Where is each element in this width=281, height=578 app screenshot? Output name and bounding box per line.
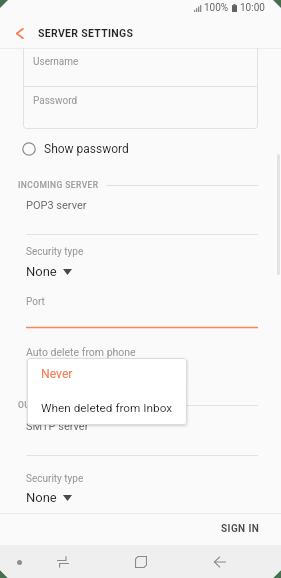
staticText: 100% xyxy=(204,2,229,14)
button[interactable]: Recent apps xyxy=(41,545,85,578)
staticText: Never xyxy=(41,367,73,381)
button[interactable]: Back xyxy=(198,545,242,578)
staticText: None xyxy=(26,264,57,279)
button[interactable]: Home xyxy=(119,545,163,578)
staticText: SERVER SETTINGS xyxy=(38,27,134,39)
staticText: Username xyxy=(33,56,79,68)
button[interactable]: When deleted from Inbox xyxy=(27,390,187,425)
staticText: When deleted from Inbox xyxy=(41,401,173,415)
staticText: SIGN IN xyxy=(221,523,260,535)
button[interactable]: Navigate up xyxy=(7,21,31,45)
button[interactable]: SIGN IN xyxy=(200,515,281,543)
button[interactable]: Never xyxy=(27,358,187,390)
staticText: INCOMING SERVER xyxy=(18,180,99,190)
staticText: Security type xyxy=(26,473,84,485)
staticText: Auto delete from phone xyxy=(26,346,136,358)
button[interactable]: None xyxy=(26,264,72,279)
staticText: Port xyxy=(26,296,45,308)
staticText: OUTGOING SERVER xyxy=(18,400,100,410)
staticText: 10:00 xyxy=(240,2,265,14)
staticText: Show password xyxy=(44,142,129,156)
button[interactable]: None xyxy=(26,490,72,505)
staticText: Security type xyxy=(26,246,84,258)
staticText: Password xyxy=(33,95,78,107)
staticText: POP3 server xyxy=(26,199,87,212)
staticText: SMTP server xyxy=(26,420,89,433)
button[interactable]: Show password xyxy=(0,138,281,160)
staticText: None xyxy=(26,490,57,505)
